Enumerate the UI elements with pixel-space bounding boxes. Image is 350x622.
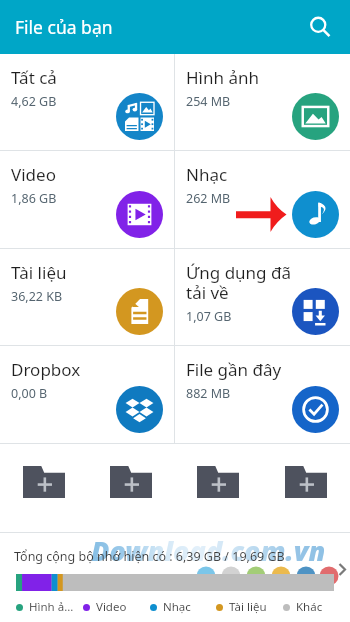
- button[interactable]: Video: [83, 599, 150, 615]
- staticText: Nhạc: [186, 163, 228, 186]
- button[interactable]: Khác: [283, 599, 333, 615]
- staticText: Nhạc: [163, 599, 191, 615]
- button[interactable]: Create folder: [0, 444, 87, 533]
- staticText: 1,07 GB: [186, 308, 232, 325]
- button[interactable]: Tài liệu: [216, 599, 283, 615]
- button[interactable]: Nhạc: [175, 151, 350, 249]
- button[interactable]: Nhạc: [150, 599, 216, 615]
- button[interactable]: Create folder: [174, 444, 262, 533]
- button[interactable]: Create folder: [262, 444, 350, 533]
- staticText: Hình ả...: [29, 599, 74, 615]
- staticText: Video: [96, 599, 127, 615]
- button[interactable]: Dropbox: [0, 346, 174, 444]
- button[interactable]: Search: [301, 8, 339, 46]
- staticText: File của bạn: [15, 15, 113, 39]
- staticText: Hình ảnh: [186, 66, 259, 89]
- button[interactable]: Ứng dụng đã tải về: [175, 249, 350, 346]
- button[interactable]: Tất cả: [0, 54, 174, 151]
- staticText: Khác: [296, 599, 323, 615]
- staticText: 254 MB: [186, 93, 231, 110]
- staticText: Tổng cộng bộ nhớ hiện có : 6,39 GB / 19,…: [14, 548, 285, 565]
- staticText: 4,62 GB: [11, 93, 57, 110]
- button[interactable]: File gần đây: [175, 346, 350, 444]
- staticText: File gần đây: [186, 358, 282, 381]
- button[interactable]: Create folder: [87, 444, 174, 533]
- staticText: 262 MB: [186, 190, 231, 207]
- staticText: Video: [11, 163, 56, 186]
- button[interactable]: Hình ảnh: [175, 54, 350, 151]
- staticText: Tài liệu: [11, 261, 67, 284]
- staticText: Ứng dụng đã tải về: [186, 261, 298, 304]
- button[interactable]: Hình ả...: [16, 599, 83, 615]
- button[interactable]: Video: [0, 151, 174, 249]
- staticText: 0,00 B: [11, 385, 48, 402]
- staticText: Tài liệu: [229, 599, 267, 615]
- staticText: 882 MB: [186, 385, 231, 402]
- staticText: Dropbox: [11, 358, 81, 381]
- staticText: 36,22 KB: [11, 288, 63, 305]
- staticText: Tất cả: [11, 66, 57, 89]
- staticText: 1,86 GB: [11, 190, 57, 207]
- staticText: Download.com.vn: [91, 532, 326, 569]
- button[interactable]: Tài liệu: [0, 249, 174, 346]
